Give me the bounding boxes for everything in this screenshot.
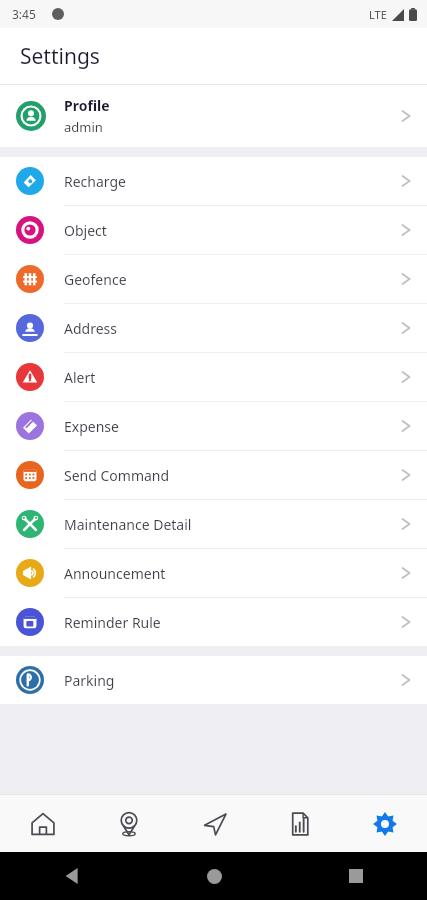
button[interactable]: Settings <box>342 795 427 852</box>
staticText: Profile <box>64 96 110 115</box>
staticText: Parking <box>64 671 401 690</box>
button[interactable]: Reports <box>257 795 342 852</box>
staticText: Expense <box>64 417 401 436</box>
staticText: Geofence <box>64 270 401 289</box>
other: Back <box>64 868 80 884</box>
staticText: Alert <box>64 368 401 387</box>
staticText: 3:45 <box>12 6 36 22</box>
staticText: Reminder Rule <box>64 613 401 632</box>
staticText: Settings <box>20 42 100 71</box>
button[interactable]: Geofence <box>0 255 427 303</box>
button[interactable]: Announcement <box>0 549 427 597</box>
button[interactable]: Recharge <box>0 157 427 205</box>
button[interactable]: Profile <box>0 85 427 147</box>
button[interactable]: Address <box>0 304 427 352</box>
button[interactable]: Object <box>0 206 427 254</box>
button[interactable]: Expense <box>0 402 427 450</box>
staticText: Address <box>64 319 401 338</box>
button[interactable]: Maintenance Detail <box>0 500 427 548</box>
staticText: Send Command <box>64 466 401 485</box>
button[interactable]: Alert <box>0 353 427 401</box>
staticText: Announcement <box>64 564 401 583</box>
staticText: admin <box>64 118 103 136</box>
staticText: Recharge <box>64 172 401 191</box>
other: Home <box>207 869 222 884</box>
button[interactable]: Home <box>0 795 86 852</box>
staticText: Maintenance Detail <box>64 515 401 534</box>
button[interactable]: Parking <box>0 656 427 704</box>
staticText: Object <box>64 221 401 240</box>
staticText: LTE <box>369 7 387 22</box>
button[interactable]: Navigate <box>172 795 257 852</box>
button[interactable]: Send Command <box>0 451 427 499</box>
button[interactable]: Reminder Rule <box>0 598 427 646</box>
button[interactable]: Places <box>86 795 172 852</box>
